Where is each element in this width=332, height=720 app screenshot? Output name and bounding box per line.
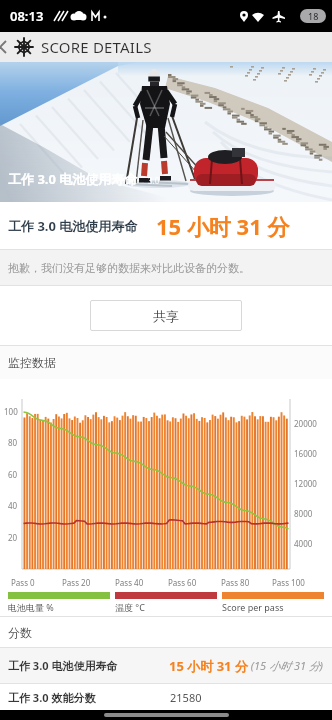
staticText: 18 [308, 10, 319, 22]
button[interactable] [0, 40, 10, 54]
staticText: 20000 [294, 418, 317, 429]
staticText: 8000 [294, 508, 313, 519]
staticText: Pass 60 [168, 577, 197, 588]
staticText: 40 [8, 500, 18, 511]
staticText: 20 [8, 532, 18, 543]
staticText: 60 [8, 469, 18, 480]
staticText: 温度 °C [115, 601, 145, 613]
staticText: Pass 20 [62, 577, 91, 588]
staticText: 21580 [170, 690, 202, 705]
staticText: 15 小时 31 分 [156, 211, 290, 241]
staticText: 100 [4, 406, 18, 417]
staticText: 分数 [8, 625, 32, 640]
staticText: 12000 [294, 478, 317, 489]
staticText: Pass 0 [11, 577, 35, 588]
staticText: Pass 100 [272, 577, 305, 588]
staticText: 3.0 [148, 175, 160, 186]
staticText: 工作 3.0 电池使用寿命 [8, 170, 138, 188]
button[interactable]: 共享 [90, 300, 242, 331]
button[interactable]: 工作 3.0 效能分数 [0, 684, 332, 710]
staticText: 80 [8, 437, 18, 448]
staticText: 4000 [294, 538, 313, 549]
staticText: (15 小时 31 分) [248, 658, 324, 673]
staticText: 工作 3.0 电池使用寿命 [8, 217, 138, 235]
staticText: 抱歉，我们没有足够的数据来对比此设备的分数。 [8, 261, 250, 275]
staticText: 15 小时 31 分 [169, 657, 248, 675]
staticText: SCORE DETAILS [41, 37, 152, 57]
staticText: Score per pass [222, 601, 284, 613]
staticText: Pass 40 [115, 577, 144, 588]
staticText: 电池电量 % [8, 601, 54, 613]
staticText: 工作 3.0 效能分数 [8, 690, 170, 705]
button[interactable]: 工作 3.0 电池使用寿命 [0, 648, 332, 683]
staticText: 工作 3.0 电池使用寿命 [8, 658, 169, 673]
staticText: 共享 [153, 308, 179, 324]
staticText: 08:13 [10, 7, 44, 25]
staticText: 16000 [294, 448, 317, 459]
staticText: Pass 80 [221, 577, 250, 588]
staticText: 监控数据 [8, 355, 56, 370]
